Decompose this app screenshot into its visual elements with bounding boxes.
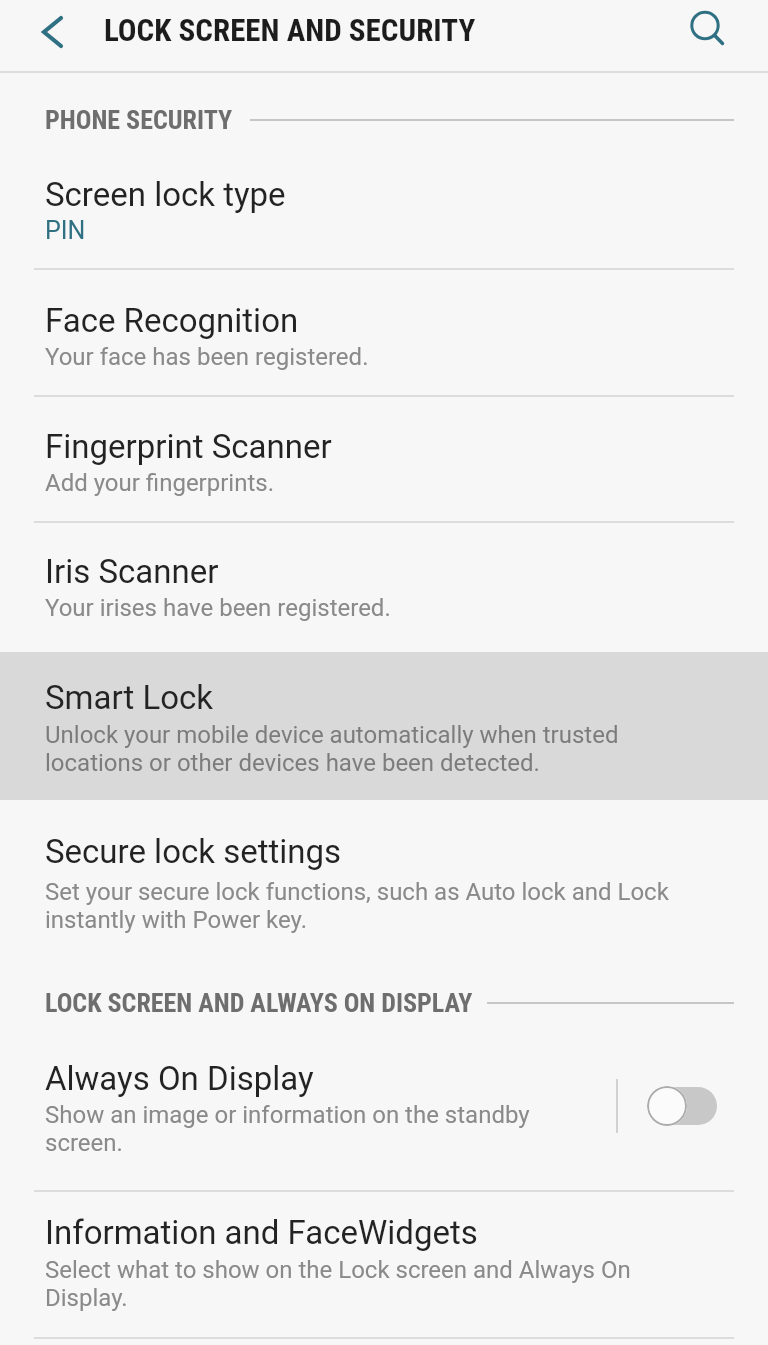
staticText: LOCK SCREEN AND SECURITY: [104, 12, 476, 48]
staticText: Select what to show on the Lock screen a…: [45, 1256, 695, 1312]
staticText: PIN: [45, 216, 86, 245]
staticText: Add your fingerprints.: [45, 469, 275, 497]
staticText: Secure lock settings: [45, 832, 342, 871]
staticText: Information and FaceWidgets: [45, 1213, 478, 1252]
button[interactable]: [0, 800, 768, 966]
staticText: Your face has been registered.: [45, 343, 369, 371]
staticText: Set your secure lock functions, such as …: [45, 878, 695, 934]
button[interactable]: [0, 80, 768, 268]
button[interactable]: [630, 1076, 740, 1136]
button[interactable]: [0, 268, 768, 395]
button[interactable]: [0, 395, 768, 521]
staticText: Always On Display: [45, 1059, 314, 1098]
staticText: Unlock your mobile device automatically …: [45, 721, 695, 777]
staticText: Screen lock type: [45, 175, 286, 214]
button[interactable]: [680, 0, 736, 56]
button[interactable]: [0, 1040, 768, 1190]
staticText: Iris Scanner: [45, 552, 219, 591]
staticText: Face Recognition: [45, 301, 299, 340]
staticText: Fingerprint Scanner: [45, 427, 332, 466]
button[interactable]: [28, 7, 76, 55]
button[interactable]: [0, 1190, 768, 1338]
button[interactable]: [0, 521, 768, 652]
staticText: LOCK SCREEN AND ALWAYS ON DISPLAY: [45, 988, 473, 1018]
button[interactable]: [0, 652, 768, 800]
staticText: Show an image or information on the stan…: [45, 1101, 565, 1157]
staticText: PHONE SECURITY: [45, 105, 233, 135]
staticText: Smart Lock: [45, 678, 214, 717]
staticText: Your irises have been registered.: [45, 594, 391, 622]
